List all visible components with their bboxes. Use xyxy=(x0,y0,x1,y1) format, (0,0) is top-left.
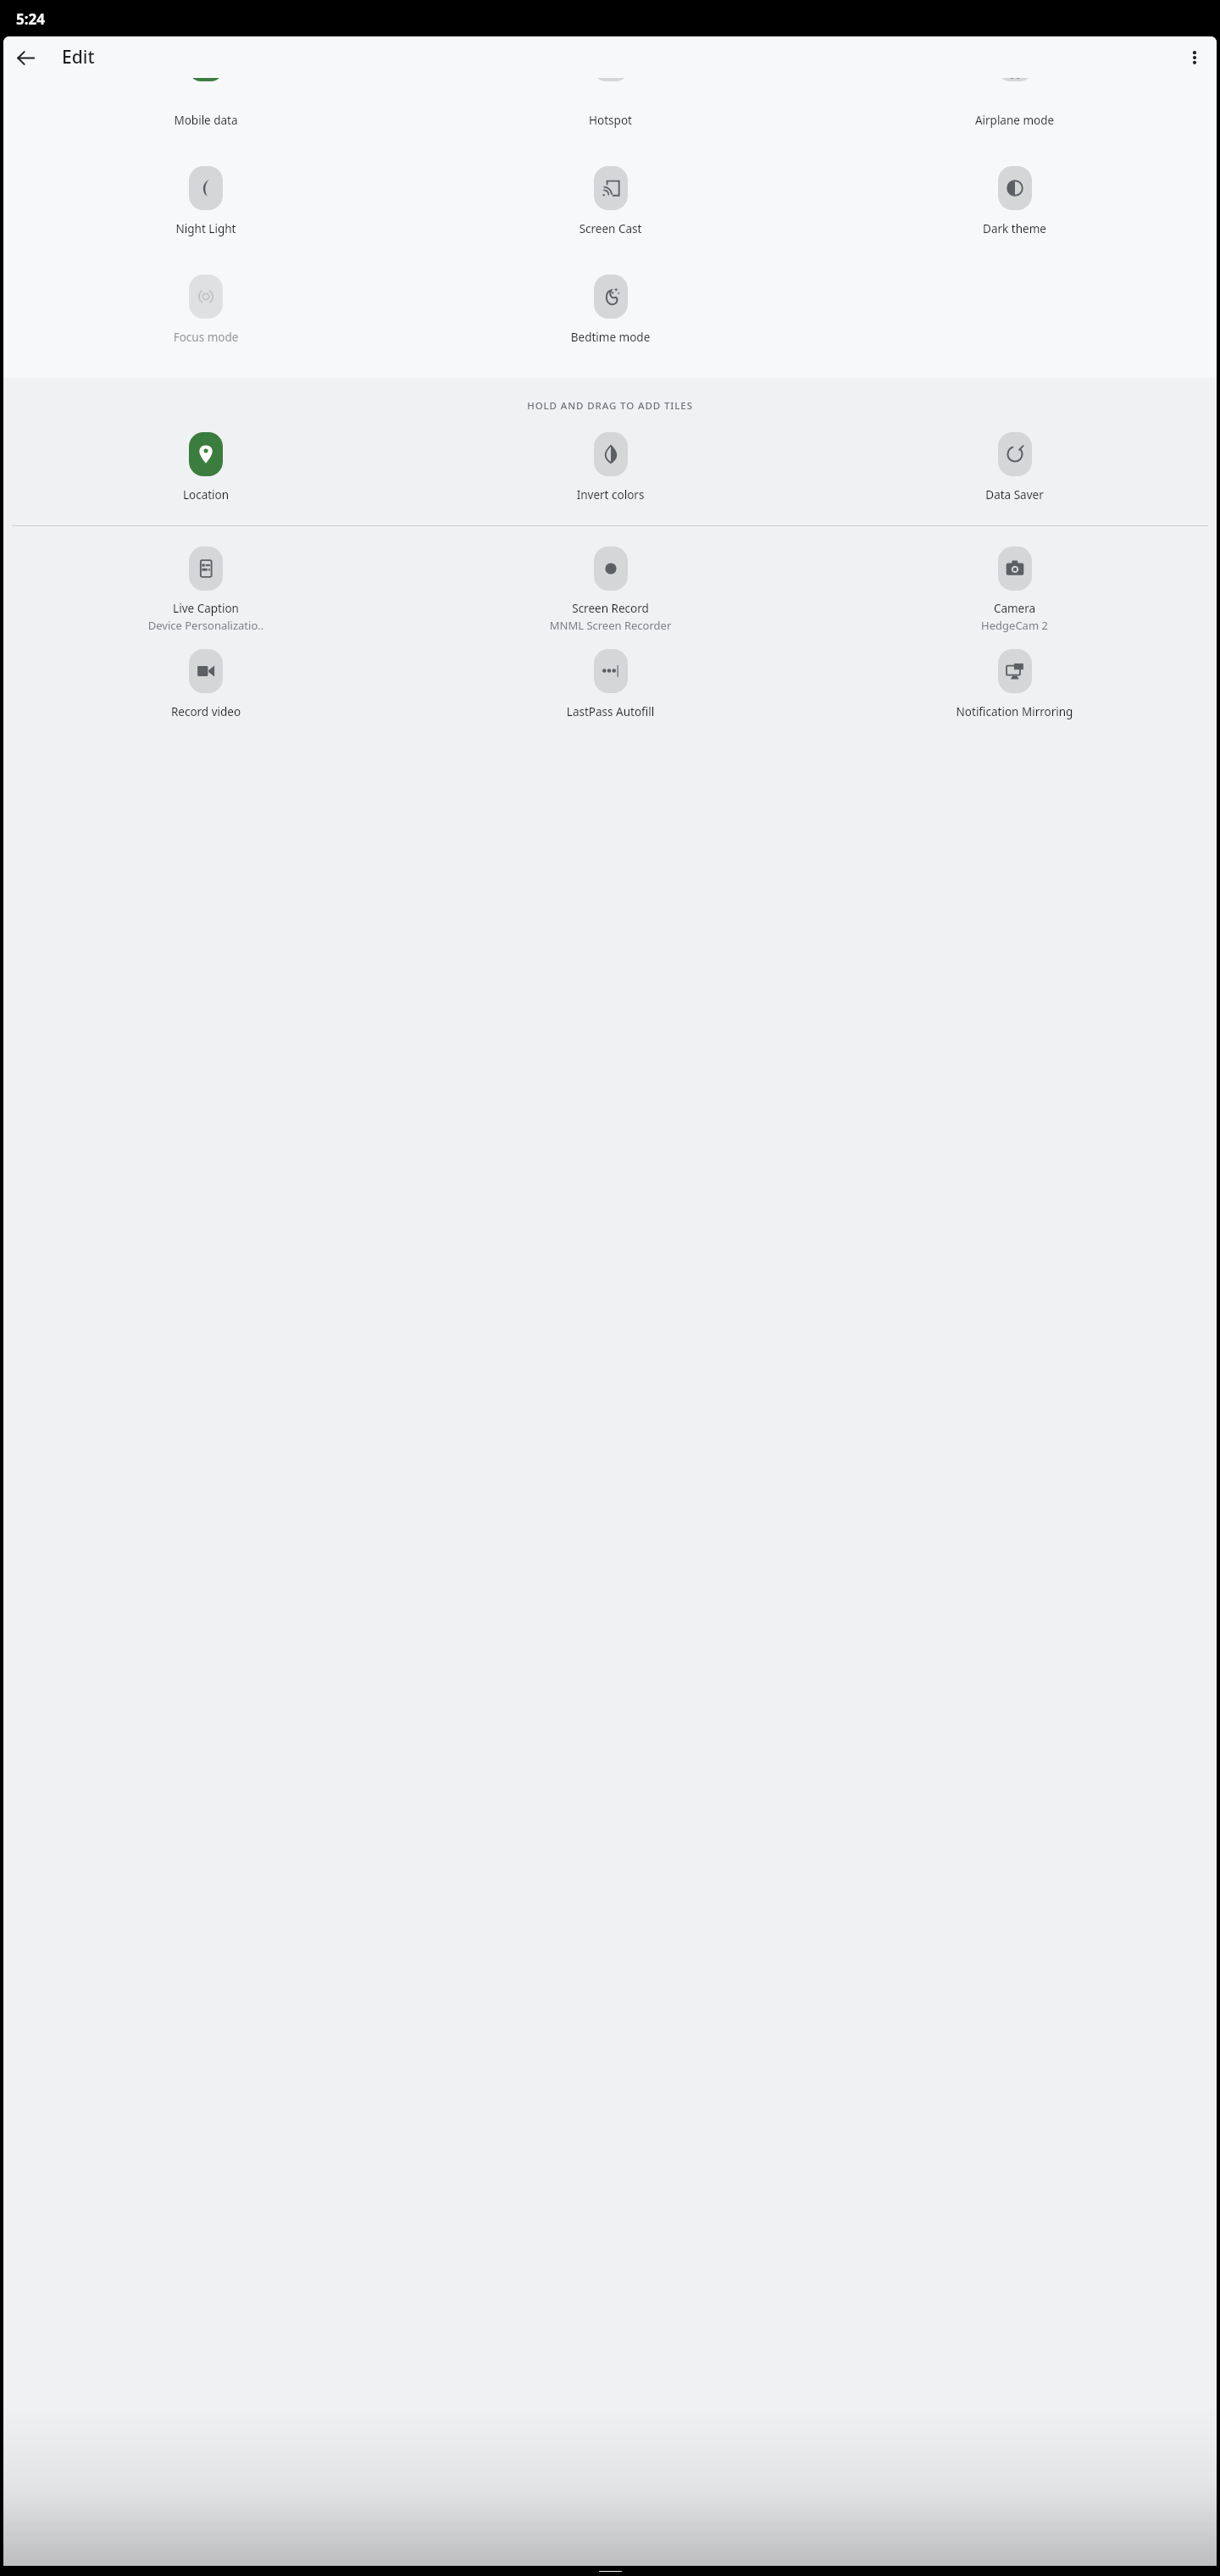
staticText: Notification Mirroring xyxy=(812,704,1217,719)
staticText: Record video xyxy=(3,704,408,719)
staticText: Bedtime mode xyxy=(408,330,812,345)
button[interactable]: Camera xyxy=(998,547,1032,591)
staticText: Mobile data xyxy=(3,113,408,128)
button[interactable]: Mobile data xyxy=(189,78,223,81)
button[interactable]: Back xyxy=(7,39,44,76)
button[interactable]: Screen Record xyxy=(594,547,628,591)
staticText: Invert colors xyxy=(408,487,812,502)
staticText: HOLD AND DRAG TO ADD TILES xyxy=(3,399,1217,413)
button[interactable]: Notification Mirroring xyxy=(998,649,1032,693)
button[interactable]: Screen Cast xyxy=(594,166,628,210)
button[interactable]: Focus mode xyxy=(189,275,223,319)
staticText: Night Light xyxy=(3,221,408,236)
button[interactable]: Data Saver xyxy=(998,432,1032,476)
staticText: Screen Record xyxy=(408,601,812,616)
staticText: Screen Cast xyxy=(408,221,812,236)
staticText: Location xyxy=(3,487,408,502)
staticText: Hotspot xyxy=(408,113,812,128)
staticText: Airplane mode xyxy=(812,113,1217,128)
staticText: LastPass Autofill xyxy=(408,704,812,719)
button[interactable]: Airplane mode xyxy=(998,78,1032,81)
button[interactable]: Bedtime mode xyxy=(594,275,628,319)
staticText: Camera xyxy=(812,601,1217,616)
staticText: Edit xyxy=(62,45,95,69)
staticText: Focus mode xyxy=(3,330,408,345)
staticText: MNML Screen Recorder xyxy=(408,618,812,633)
staticText: 5:24 xyxy=(16,9,45,29)
button[interactable]: LastPass Autofill xyxy=(594,649,628,693)
button[interactable]: Night Light xyxy=(189,166,223,210)
button[interactable]: Location xyxy=(189,432,223,476)
staticText: Live Caption xyxy=(3,601,408,616)
staticText: Device Personalizatio.. xyxy=(3,618,408,633)
button[interactable]: Invert colors xyxy=(594,432,628,476)
button[interactable]: Hotspot xyxy=(594,78,628,81)
staticText: HedgeCam 2 xyxy=(812,618,1217,633)
staticText: Data Saver xyxy=(812,487,1217,502)
button[interactable]: Record video xyxy=(189,649,223,693)
button[interactable]: Live Caption xyxy=(189,547,223,591)
button[interactable]: More options xyxy=(1176,39,1213,76)
staticText: Dark theme xyxy=(812,221,1217,236)
button[interactable]: Dark theme xyxy=(998,166,1032,210)
